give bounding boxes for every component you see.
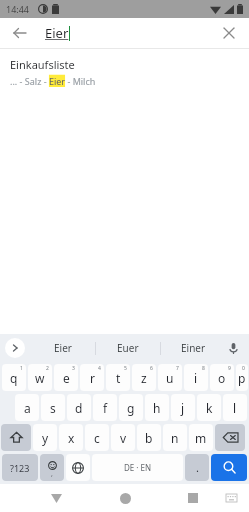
staticText: 6 — [150, 365, 153, 372]
staticText: DE · EN — [124, 462, 152, 473]
staticText: k — [206, 400, 213, 416]
button[interactable]: Clear search — [217, 21, 241, 45]
button[interactable]: ?123 — [2, 454, 38, 481]
button[interactable]: m — [189, 424, 213, 451]
button[interactable]: l — [223, 394, 247, 421]
button[interactable]: i — [184, 364, 208, 391]
staticText: b — [145, 430, 153, 446]
button[interactable]: Recent apps — [181, 486, 205, 510]
staticText: p — [238, 370, 246, 386]
button[interactable]: v — [111, 424, 135, 451]
staticText: h — [153, 400, 161, 416]
button[interactable]: Change language — [66, 454, 90, 481]
staticText: c — [94, 430, 100, 446]
staticText: 4 — [98, 365, 101, 372]
staticText: 2 — [46, 365, 49, 372]
button[interactable]: Eier — [30, 334, 95, 362]
button[interactable]: n — [163, 424, 187, 451]
button[interactable]: Emoji — [40, 454, 64, 481]
staticText: ... - Salz - Eier - Milch — [10, 75, 96, 87]
staticText: w — [35, 370, 45, 386]
button[interactable]: Voice input — [223, 338, 243, 358]
staticText: a — [24, 400, 31, 416]
staticText: u — [166, 370, 174, 386]
staticText: Einer — [181, 341, 206, 355]
staticText: r — [90, 370, 95, 386]
button[interactable]: s — [41, 394, 65, 421]
staticText: z — [141, 370, 147, 386]
button[interactable]: . — [185, 454, 209, 481]
staticText: x — [68, 430, 75, 446]
staticText: l — [233, 400, 237, 416]
button[interactable]: e — [54, 364, 78, 391]
staticText: f — [103, 400, 108, 416]
button[interactable]: k — [197, 394, 221, 421]
staticText: t — [116, 370, 121, 386]
staticText: 14:44 — [6, 3, 30, 15]
staticText: q — [10, 370, 18, 386]
button[interactable]: r — [80, 364, 104, 391]
staticText: 1 — [20, 365, 23, 372]
button[interactable]: Backspace — [215, 424, 245, 451]
staticText: Eier — [45, 24, 69, 42]
button[interactable]: Back — [8, 21, 32, 45]
staticText: e — [63, 370, 70, 386]
staticText: 8 — [202, 365, 205, 372]
button[interactable]: Einer — [161, 334, 225, 362]
staticText: g — [127, 400, 135, 416]
button[interactable]: f — [93, 394, 117, 421]
button[interactable]: Search — [211, 454, 247, 481]
button[interactable]: Home — [113, 486, 137, 510]
staticText: d — [75, 400, 83, 416]
staticText: 0 — [242, 365, 245, 372]
staticText: Eier — [54, 341, 72, 355]
button[interactable]: o — [210, 364, 234, 391]
staticText: Euer — [117, 341, 139, 355]
staticText: 9 — [228, 365, 231, 372]
button[interactable]: Einkaufsliste — [0, 49, 249, 95]
staticText: 5 — [124, 365, 127, 372]
staticText: ?123 — [10, 462, 30, 474]
staticText: 7 — [176, 365, 179, 372]
button[interactable]: More suggestions — [5, 338, 25, 358]
button[interactable]: b — [137, 424, 161, 451]
button[interactable]: x — [59, 424, 83, 451]
button[interactable]: Euer — [96, 334, 160, 362]
button[interactable]: p — [236, 364, 248, 391]
staticText: . — [196, 460, 199, 475]
staticText: y — [42, 430, 49, 446]
button[interactable]: w — [28, 364, 52, 391]
button[interactable]: c — [85, 424, 109, 451]
staticText: s — [50, 400, 56, 416]
button[interactable]: z — [132, 364, 156, 391]
button[interactable]: g — [119, 394, 143, 421]
staticText: v — [120, 430, 127, 446]
staticText: 3 — [72, 365, 75, 372]
button[interactable]: u — [158, 364, 182, 391]
staticText: Einkaufsliste — [10, 57, 75, 72]
staticText: , — [51, 469, 53, 479]
button[interactable]: j — [171, 394, 195, 421]
button[interactable]: d — [67, 394, 91, 421]
button[interactable]: h — [145, 394, 169, 421]
button[interactable]: Hide keyboard — [44, 486, 68, 510]
button[interactable]: q — [2, 364, 26, 391]
staticText: i — [194, 370, 198, 386]
staticText: j — [181, 400, 185, 416]
button[interactable]: Shift — [1, 424, 31, 451]
button[interactable]: y — [33, 424, 57, 451]
button[interactable]: a — [15, 394, 39, 421]
staticText: o — [218, 370, 226, 386]
staticText: m — [195, 430, 207, 446]
staticText: n — [171, 430, 179, 446]
button[interactable]: t — [106, 364, 130, 391]
button[interactable]: DE · EN — [92, 454, 183, 481]
